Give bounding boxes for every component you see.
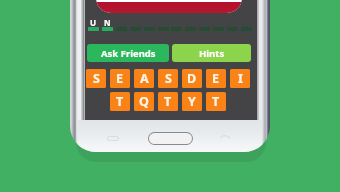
staticText: T [212,93,220,110]
staticText: I [238,70,243,87]
staticText: E [116,70,124,87]
button[interactable]: S [86,69,106,88]
button[interactable]: Menu [106,134,120,143]
staticText: Q [139,93,149,110]
button[interactable]: A [134,69,154,88]
staticText: A [140,70,149,87]
button[interactable]: Q [134,92,154,111]
button[interactable]: T [158,92,178,111]
button[interactable]: D [182,69,202,88]
staticText: Y [188,93,196,110]
button[interactable]: E [110,69,130,88]
button[interactable]: S [158,69,178,88]
button[interactable]: I [230,69,250,88]
button[interactable]: Y [182,92,202,111]
staticText: E [212,70,220,87]
button[interactable]: Home [148,132,193,145]
staticText: S [93,70,100,87]
staticText: D [187,70,197,87]
button[interactable]: Back [218,133,232,144]
button[interactable]: E [206,69,226,88]
button[interactable]: T [110,92,130,111]
button[interactable]: T [206,92,226,111]
staticText: S [165,70,172,87]
staticText: Hints [199,47,225,60]
staticText: Ask Friends [101,47,156,60]
staticText: N [104,17,111,27]
button[interactable]: Ask Friends [87,44,169,62]
staticText: T [116,93,124,110]
staticText: U [90,17,97,27]
button[interactable]: Hints [172,44,251,62]
staticText: T [164,93,172,110]
